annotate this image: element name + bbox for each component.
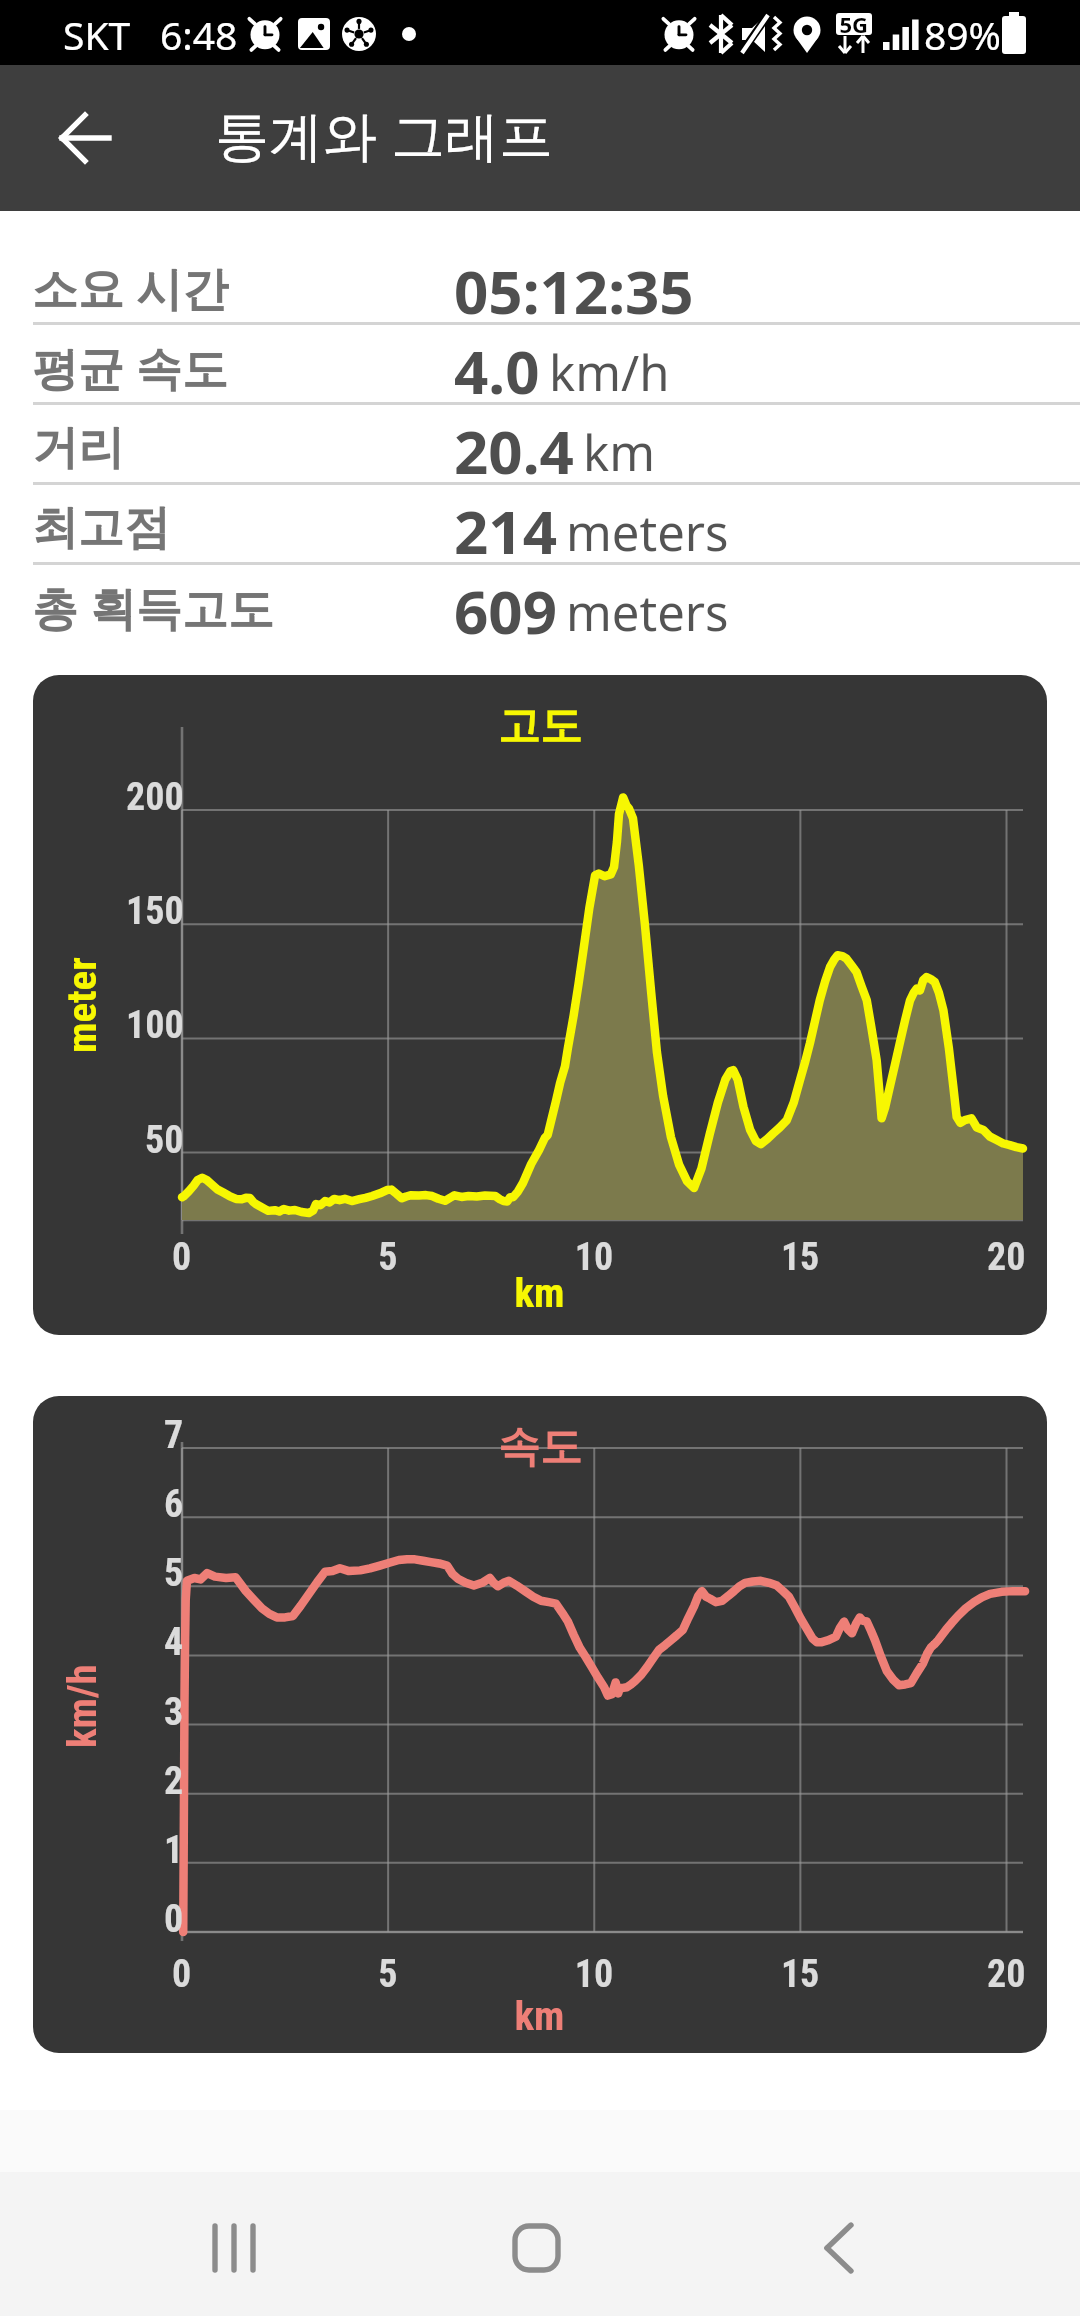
staticText: meters [566, 499, 729, 566]
staticText: 4.0 [454, 330, 540, 407]
staticText: 214 [454, 490, 557, 567]
button[interactable]: Home [476, 2188, 596, 2308]
staticText: 소요 시간 [32, 256, 228, 319]
button[interactable]: Recent apps [174, 2188, 294, 2308]
staticText: 거리 [32, 419, 124, 477]
staticText: 총 획득고도 [32, 576, 274, 639]
staticText: meters [566, 579, 729, 646]
staticText: 최고점 [32, 499, 170, 557]
staticText: 20.4 [454, 410, 574, 487]
staticText: km [583, 419, 655, 486]
staticText: 평균 속도 [32, 336, 228, 399]
staticText: 609 [454, 570, 557, 647]
staticText: km/h [549, 339, 670, 406]
button[interactable]: Back [779, 2188, 899, 2308]
staticText: 통계와 그래프 [215, 97, 554, 171]
staticText: 05:12:35 [454, 250, 694, 327]
button[interactable]: Back [29, 83, 139, 193]
